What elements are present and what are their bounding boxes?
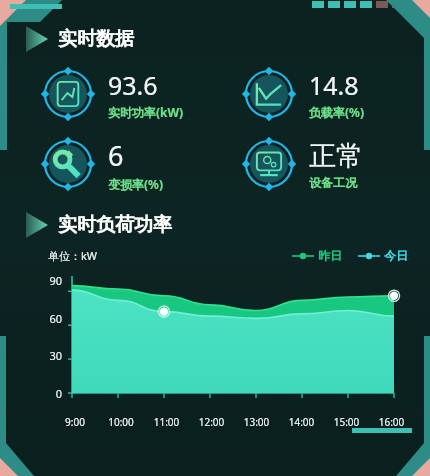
button[interactable]: 变损率(%) xyxy=(40,136,205,192)
staticText: 15:00 xyxy=(324,415,369,429)
staticText: 13:00 xyxy=(234,415,279,429)
button[interactable]: 实时功率(kW) xyxy=(40,66,205,122)
staticText: 正常 xyxy=(309,139,363,173)
button[interactable]: 昨日 xyxy=(292,248,342,263)
staticText: 60 xyxy=(0,311,62,326)
staticText: 16:00 xyxy=(369,415,414,429)
staticText: 实时负荷功率 xyxy=(58,213,172,237)
button[interactable]: 实时数据 xyxy=(0,26,430,52)
staticText: 12:00 xyxy=(189,415,234,429)
staticText: 90 xyxy=(0,273,62,288)
staticText: 11:00 xyxy=(144,415,189,429)
staticText: 负载率(%) xyxy=(309,104,364,120)
staticText: 14:00 xyxy=(279,415,324,429)
button[interactable]: 今日 xyxy=(358,248,408,263)
staticText: 实时功率(kW) xyxy=(108,104,184,120)
staticText: 30 xyxy=(0,348,62,363)
staticText: 昨日 xyxy=(318,248,342,263)
staticText: 0 xyxy=(0,386,62,401)
staticText: 14.8 xyxy=(309,68,359,102)
button[interactable]: 实时负荷功率 xyxy=(0,212,430,238)
staticText: 实时数据 xyxy=(58,27,134,51)
staticText: 9:00 xyxy=(52,415,98,429)
staticText: 单位：kW xyxy=(48,248,98,263)
staticText: 93.6 xyxy=(108,68,158,102)
button[interactable]: 负载率(%) xyxy=(241,66,406,122)
staticText: 设备工况 xyxy=(309,175,357,190)
button[interactable]: 设备工况 xyxy=(241,136,406,192)
staticText: 变损率(%) xyxy=(108,176,163,192)
staticText: 10:00 xyxy=(98,415,144,429)
staticText: 今日 xyxy=(384,248,408,263)
staticText: 6 xyxy=(108,137,124,174)
